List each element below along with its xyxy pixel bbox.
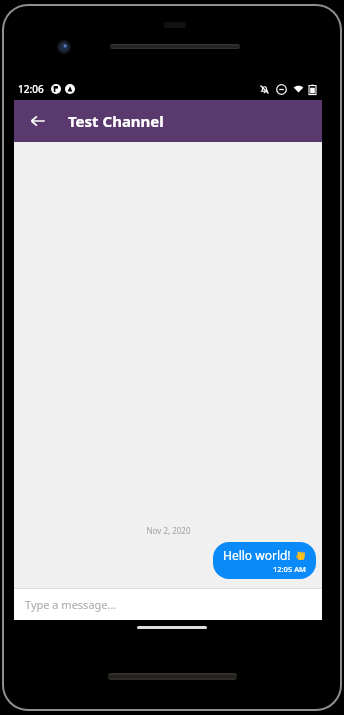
staticText: Hello world! <box>223 547 291 563</box>
staticText: 12:05 AM <box>273 564 306 574</box>
button[interactable]: Hello world! <box>213 542 316 579</box>
staticText: Nov 2, 2020 <box>146 525 191 536</box>
staticText: 12:06 <box>18 82 44 96</box>
button[interactable]: Type a message... <box>14 589 322 620</box>
staticText: Test Channel <box>68 111 164 131</box>
staticText: Type a message... <box>25 597 117 612</box>
button[interactable]: Back <box>20 103 56 139</box>
